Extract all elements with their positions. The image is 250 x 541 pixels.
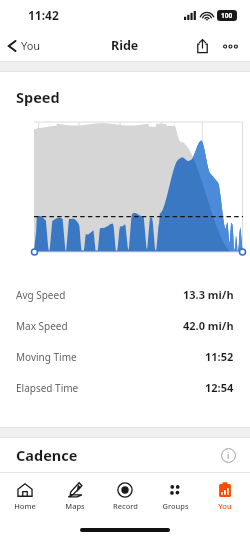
staticText: 11:42 [28, 7, 59, 23]
staticText: Home [14, 501, 36, 511]
staticText: 13.3 mi/h [183, 287, 234, 302]
staticText: Maps [65, 501, 85, 511]
staticText: You [218, 501, 232, 511]
button[interactable]: Elapsed Time [0, 372, 250, 403]
staticText: Avg Speed [16, 288, 66, 302]
staticText: Ride [111, 37, 139, 54]
staticText: Cadence [16, 445, 78, 465]
button[interactable]: Home [0, 473, 50, 519]
staticText: Groups [162, 501, 189, 511]
button[interactable]: You [0, 33, 51, 58]
staticText: 100 [221, 11, 233, 20]
button[interactable]: Max Speed [0, 310, 250, 341]
staticText: You [21, 38, 41, 53]
staticText: Max Speed [16, 319, 68, 333]
staticText: Speed [16, 87, 60, 107]
button[interactable]: Moving Time [0, 341, 250, 372]
button[interactable]: Maps [50, 473, 100, 519]
staticText: i [227, 450, 230, 462]
staticText: 11:52 [205, 349, 234, 364]
button[interactable]: Avg Speed [0, 279, 250, 310]
staticText: Elapsed Time [16, 381, 79, 395]
staticText: Moving Time [16, 350, 77, 364]
button[interactable]: Cadence [0, 438, 250, 472]
staticText: 42.0 mi/h [183, 318, 234, 333]
button[interactable]: Record [100, 473, 150, 519]
staticText: Record [113, 501, 138, 511]
staticText: 12:54 [205, 380, 234, 395]
button[interactable]: More options [217, 33, 243, 59]
button[interactable]: You [200, 473, 250, 519]
button[interactable]: Groups [150, 473, 200, 519]
button[interactable]: Share [189, 33, 215, 59]
button[interactable]: Info [221, 448, 236, 463]
